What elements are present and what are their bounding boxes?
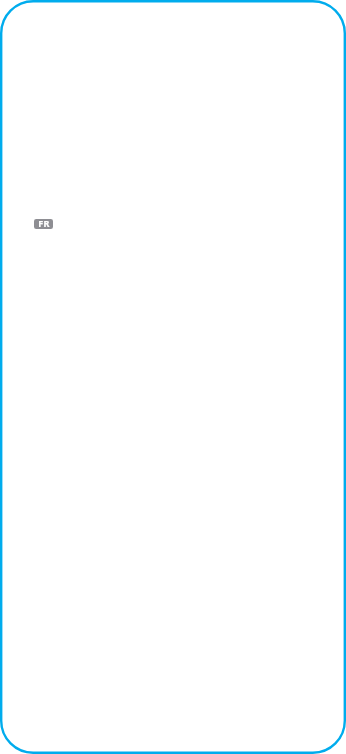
button[interactable]: France flag	[34, 219, 53, 229]
staticText: FR	[38, 219, 50, 227]
